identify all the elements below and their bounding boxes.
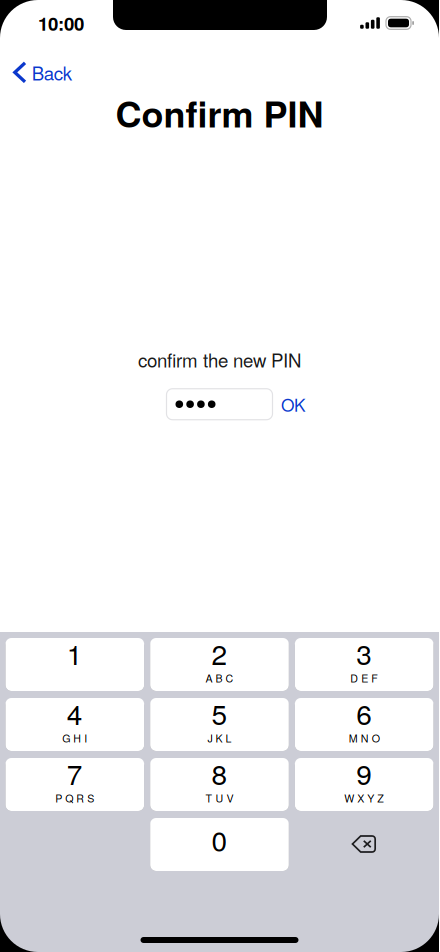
staticText: T U V bbox=[205, 790, 233, 806]
staticText: Confirm PIN bbox=[115, 87, 323, 139]
staticText: 4 bbox=[67, 693, 83, 733]
button[interactable]: 4 bbox=[5, 698, 144, 751]
staticText: 9 bbox=[356, 753, 372, 793]
button[interactable]: Delete bbox=[295, 818, 433, 871]
staticText: A B C bbox=[205, 670, 233, 686]
button[interactable]: 2 bbox=[150, 638, 289, 691]
button[interactable]: Back bbox=[0, 46, 84, 91]
staticText: Back bbox=[32, 59, 72, 86]
button[interactable]: 3 bbox=[295, 638, 433, 691]
button[interactable]: 5 bbox=[150, 698, 289, 751]
staticText: 2 bbox=[211, 633, 227, 673]
button[interactable]: 8 bbox=[150, 758, 289, 811]
staticText: J K L bbox=[207, 730, 231, 746]
staticText: 6 bbox=[356, 693, 372, 733]
staticText: 1 bbox=[67, 633, 83, 673]
button[interactable]: OK bbox=[273, 385, 314, 424]
staticText: 0 bbox=[211, 819, 227, 860]
button[interactable]: 1 bbox=[5, 638, 144, 691]
button[interactable]: 7 bbox=[5, 758, 144, 811]
staticText: D E F bbox=[350, 670, 378, 686]
button[interactable]: 6 bbox=[295, 698, 433, 751]
button[interactable]: 9 bbox=[295, 758, 433, 811]
staticText: G H I bbox=[62, 730, 87, 746]
staticText: 10:00 bbox=[38, 10, 84, 36]
staticText: 5 bbox=[211, 693, 227, 733]
staticText: OK bbox=[281, 392, 306, 417]
staticText: 7 bbox=[67, 753, 83, 793]
staticText: 3 bbox=[356, 633, 372, 673]
staticText: W X Y Z bbox=[344, 790, 384, 806]
staticText: P Q R S bbox=[55, 790, 94, 806]
staticText: 8 bbox=[211, 753, 227, 793]
staticText: confirm the new PIN bbox=[138, 346, 301, 373]
staticText: M N O bbox=[349, 730, 380, 746]
button[interactable]: 0 bbox=[150, 818, 289, 871]
